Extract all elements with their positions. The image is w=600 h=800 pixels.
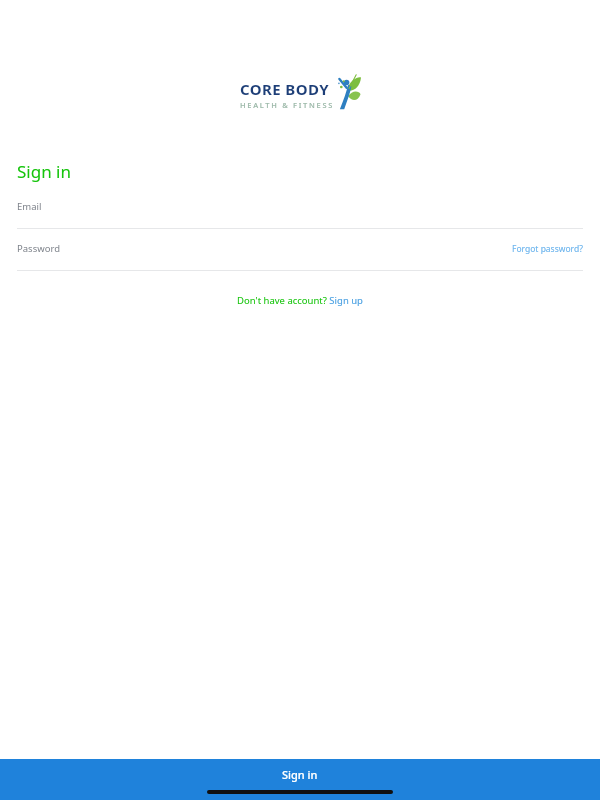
staticText: Password <box>17 242 60 255</box>
button[interactable]: Sign in <box>0 759 600 790</box>
button[interactable]: Forgot password? <box>512 243 583 255</box>
button[interactable]: Don't have account? Sign up <box>231 291 369 310</box>
staticText: Don't have account? Sign up <box>237 294 363 307</box>
staticText: CORE BODY <box>240 79 329 99</box>
staticText: Sign in <box>17 160 71 183</box>
staticText: Forgot password? <box>512 243 583 255</box>
staticText: Email <box>17 200 42 213</box>
button[interactable]: Password <box>17 242 512 255</box>
button[interactable]: Email <box>0 200 600 229</box>
staticText: HEALTH & FITNESS <box>240 100 335 110</box>
staticText: Sign in <box>282 767 318 782</box>
